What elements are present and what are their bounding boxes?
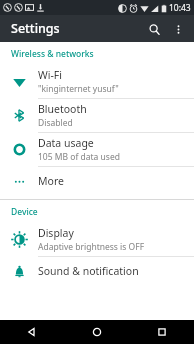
button[interactable]: Data usage [0,133,194,166]
staticText: "kinginternet yusuf" [38,83,119,95]
button[interactable]: Back [0,320,64,344]
button[interactable]: Wi-Fi [0,65,194,98]
staticText: Data usage [38,136,94,150]
button[interactable]: Search [142,17,166,41]
staticText: 10:43 [169,2,191,14]
staticText: 105 MB of data used [38,151,120,163]
button[interactable]: Recent apps [129,320,194,344]
button[interactable]: Bluetooth [0,99,194,132]
staticText: Bluetooth [38,102,87,116]
staticText: Display [38,226,74,240]
staticText: Settings [11,20,60,37]
staticText: Sound & notification [38,264,139,278]
button[interactable]: More options [166,17,190,41]
button[interactable]: Home [64,320,129,344]
staticText: Adaptive brightness is OFF [38,241,145,253]
button[interactable]: More [0,167,194,195]
staticText: More [38,174,64,188]
staticText: Disabled [38,117,73,129]
button[interactable]: Display [0,223,194,256]
button[interactable]: Sound & notification [0,257,194,285]
staticText: Device [11,206,38,218]
staticText: Wireless & networks [11,48,94,60]
staticText: Wi-Fi [38,68,63,82]
